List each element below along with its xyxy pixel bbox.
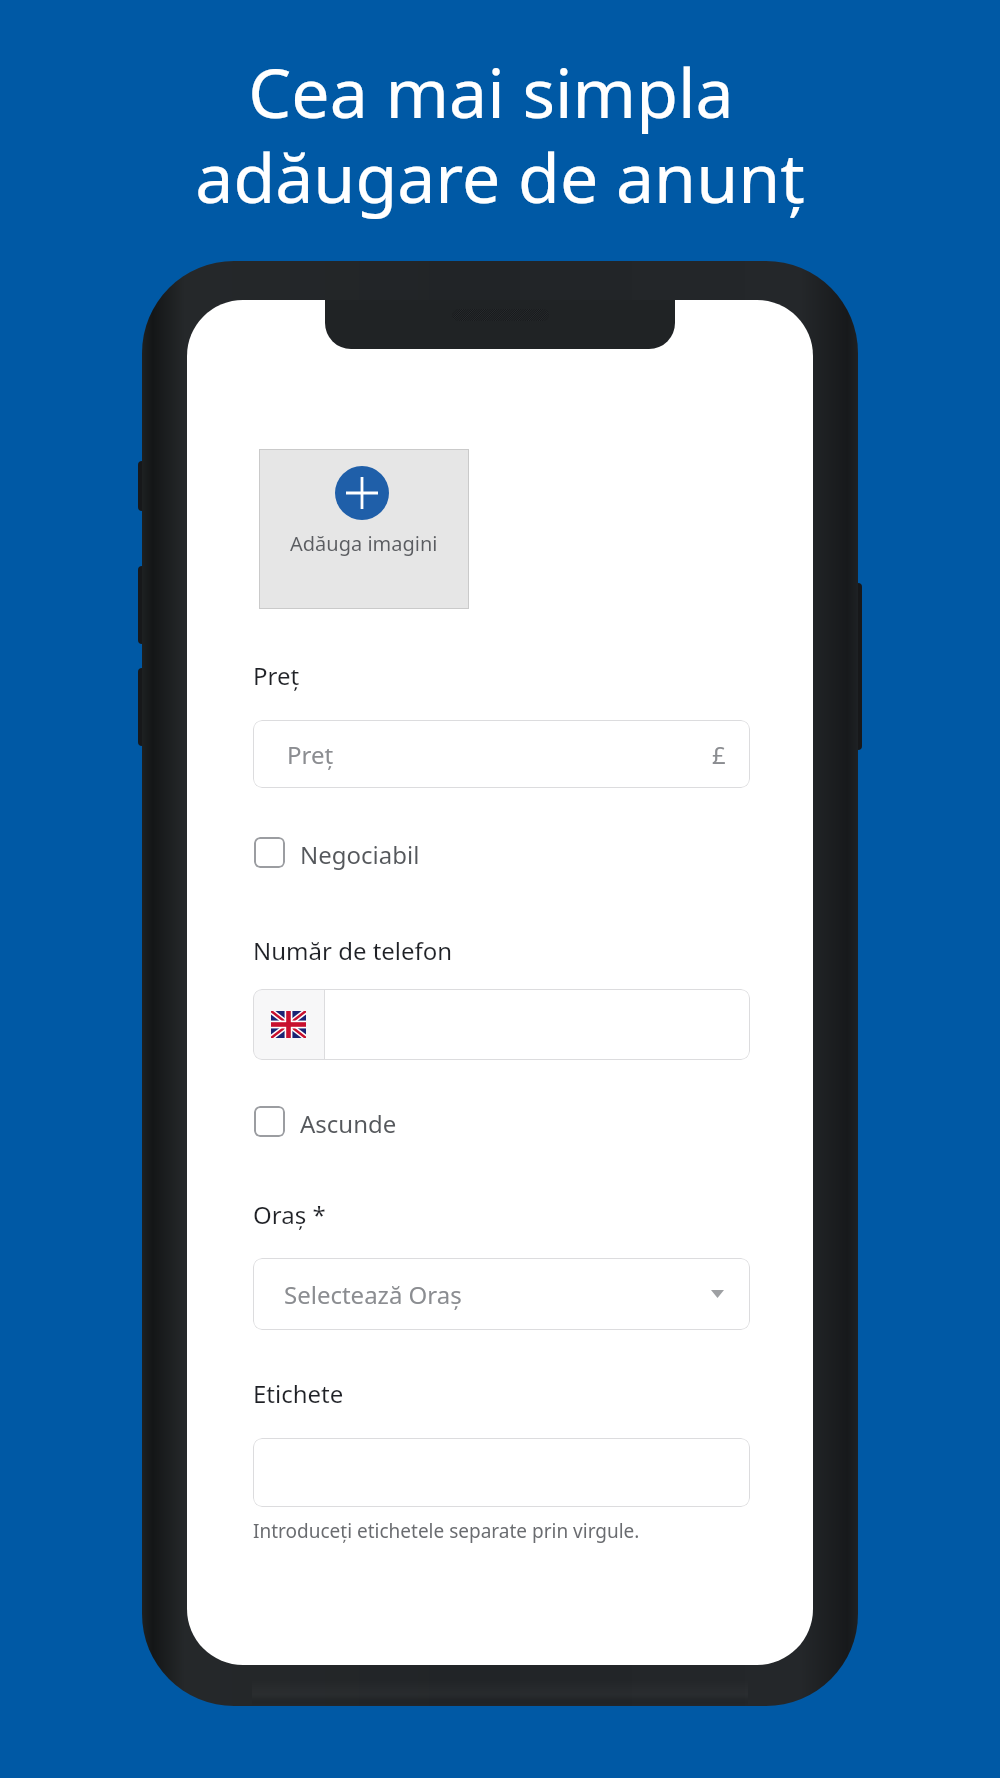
- button[interactable]: [253, 1438, 750, 1507]
- staticText: Cea mai simpla: [248, 45, 734, 138]
- button[interactable]: Select country code: [253, 989, 324, 1060]
- button[interactable]: Preț: [253, 720, 750, 788]
- staticText: Ascunde: [300, 1107, 397, 1140]
- button[interactable]: Selectează Oraș: [253, 1258, 750, 1330]
- staticText: Adăuga imagini: [290, 530, 438, 557]
- staticText: £: [712, 738, 726, 771]
- staticText: Selectează Oraș: [284, 1278, 462, 1311]
- staticText: Negociabil: [300, 838, 420, 871]
- button[interactable]: Select country code: [253, 989, 750, 1060]
- staticText: Preț: [253, 659, 300, 692]
- button[interactable]: Negociabil: [253, 838, 420, 871]
- staticText: Număr de telefon: [253, 934, 453, 967]
- staticText: Oraș *: [253, 1198, 326, 1231]
- button[interactable]: Ascunde: [253, 1107, 397, 1140]
- button[interactable]: Adăuga imagini: [259, 449, 469, 609]
- staticText: Etichete: [253, 1377, 344, 1410]
- staticText: adăugare de anunț: [195, 130, 805, 223]
- staticText: Introduceți etichetele separate prin vir…: [253, 1518, 640, 1544]
- staticText: Preț: [287, 738, 334, 771]
